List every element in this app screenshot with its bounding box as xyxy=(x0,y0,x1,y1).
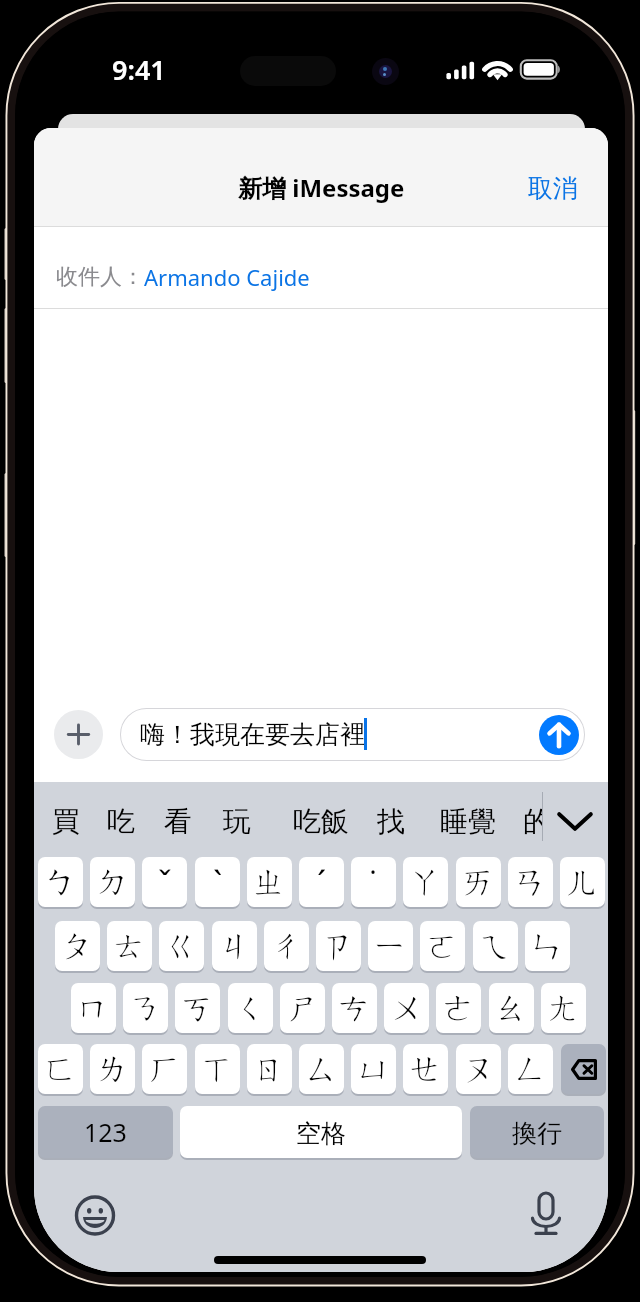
staticText: ㄧ xyxy=(374,925,408,967)
button[interactable]: 看 xyxy=(153,795,203,847)
staticText: 123 xyxy=(84,1115,127,1149)
button[interactable]: ㄛ xyxy=(420,921,465,971)
staticText: 找 xyxy=(377,804,405,839)
button[interactable]: ㄥ xyxy=(508,1044,553,1094)
button[interactable]: ㄒ xyxy=(195,1044,240,1094)
staticText: ㄜ xyxy=(442,987,476,1029)
button[interactable]: ㄔ xyxy=(264,921,309,971)
button[interactable]: ㄗ xyxy=(316,921,361,971)
button[interactable]: ㄍ xyxy=(159,921,204,971)
button[interactable]: ㄠ xyxy=(489,983,534,1033)
staticText: ㄞ xyxy=(462,861,496,903)
staticText: ㄍ xyxy=(165,925,199,967)
button[interactable]: ㄝ xyxy=(403,1044,448,1094)
staticText: ˋ xyxy=(213,860,223,905)
button[interactable]: ㄜ xyxy=(436,983,481,1033)
button[interactable]: ㄖ xyxy=(247,1044,292,1094)
button[interactable]: ㄡ xyxy=(456,1044,501,1094)
button[interactable]: ˙ xyxy=(351,857,396,907)
staticText: ㄠ xyxy=(495,987,529,1029)
button[interactable]: 找 xyxy=(366,795,416,847)
staticText: 新增 iMessage xyxy=(238,171,405,204)
button[interactable]: 空格 xyxy=(180,1106,462,1158)
button[interactable]: ㄆ xyxy=(55,921,100,971)
staticText: ㄘ xyxy=(338,987,372,1029)
button[interactable]: ㄉ xyxy=(90,857,135,907)
staticText: 玩 xyxy=(223,804,251,839)
button[interactable]: ㄅ xyxy=(38,857,83,907)
staticText: ㄒ xyxy=(201,1048,235,1090)
button[interactable]: ㄑ xyxy=(228,983,273,1033)
button[interactable]: 取消 xyxy=(505,162,600,214)
button[interactable]: ㄋ xyxy=(123,983,168,1033)
button[interactable]: Dictation xyxy=(524,1188,572,1236)
staticText: ˊ xyxy=(317,860,327,905)
button[interactable]: ㄘ xyxy=(332,983,377,1033)
button[interactable]: ㄚ xyxy=(403,857,448,907)
button[interactable]: 睡覺 xyxy=(434,795,502,847)
button[interactable]: 嗨！我現在要去店裡 xyxy=(120,708,585,761)
staticText: 看 xyxy=(164,804,192,839)
button[interactable]: ㄧ xyxy=(368,921,413,971)
button[interactable]: ˇ xyxy=(142,857,187,907)
button[interactable]: 買 xyxy=(41,795,91,847)
staticText: 買 xyxy=(52,804,80,839)
button[interactable]: ㄨ xyxy=(384,983,429,1033)
button[interactable]: ㄩ xyxy=(351,1044,396,1094)
staticText: ㄖ xyxy=(253,1048,287,1090)
button[interactable]: ㄏ xyxy=(142,1044,187,1094)
staticText: ㄝ xyxy=(409,1048,443,1090)
staticText: ㄐ xyxy=(218,925,252,967)
staticText: 的 xyxy=(523,804,542,839)
staticText: ㄈ xyxy=(44,1048,78,1090)
button[interactable]: ㄊ xyxy=(107,921,152,971)
staticText: ㄛ xyxy=(426,925,460,967)
staticText: ㄔ xyxy=(270,925,304,967)
button[interactable]: ㄇ xyxy=(71,983,116,1033)
button[interactable]: 玩 xyxy=(212,795,262,847)
button[interactable]: Emoji xyxy=(69,1189,121,1241)
staticText: ㄙ xyxy=(305,1048,339,1090)
button[interactable]: ㄟ xyxy=(473,921,518,971)
button[interactable]: Collapse candidates xyxy=(549,795,601,847)
staticText: ㄓ xyxy=(253,861,287,903)
button[interactable]: ㄌ xyxy=(90,1044,135,1094)
staticText: ㄑ xyxy=(234,987,268,1029)
button[interactable]: ㄙ xyxy=(299,1044,344,1094)
button[interactable]: ˊ xyxy=(299,857,344,907)
staticText: ㄕ xyxy=(286,987,320,1029)
staticText: ㄋ xyxy=(129,987,163,1029)
button[interactable]: Backspace xyxy=(561,1044,606,1094)
button[interactable]: ㄤ xyxy=(541,983,586,1033)
staticText: 吃 xyxy=(107,804,135,839)
button[interactable]: ㄓ xyxy=(247,857,292,907)
button[interactable]: ㄈ xyxy=(38,1044,83,1094)
staticText: ㄆ xyxy=(61,925,95,967)
button[interactable]: 123 xyxy=(38,1106,173,1158)
button[interactable]: Send xyxy=(539,715,579,755)
staticText: ˙ xyxy=(370,860,377,905)
staticText: ㄟ xyxy=(479,925,513,967)
staticText: ㄏ xyxy=(148,1048,182,1090)
staticText: Armando Cajide xyxy=(144,262,310,292)
button[interactable]: 換行 xyxy=(470,1106,604,1158)
button[interactable]: ㄎ xyxy=(175,983,220,1033)
staticText: 睡覺 xyxy=(440,804,496,839)
staticText: 收件人： xyxy=(56,263,144,291)
button[interactable]: 吃 xyxy=(96,795,146,847)
button[interactable]: 的 xyxy=(512,795,542,847)
button[interactable]: ㄦ xyxy=(560,857,605,907)
staticText: ㄊ xyxy=(113,925,147,967)
button[interactable]: ㄕ xyxy=(280,983,325,1033)
button[interactable]: ˋ xyxy=(195,857,240,907)
staticText: ㄚ xyxy=(409,861,443,903)
button[interactable]: ㄢ xyxy=(508,857,553,907)
button[interactable]: Add attachment xyxy=(54,710,103,759)
button[interactable]: 吃飯 xyxy=(287,795,355,847)
button[interactable]: ㄣ xyxy=(525,921,570,971)
button[interactable]: ㄐ xyxy=(212,921,257,971)
button[interactable]: ㄞ xyxy=(456,857,501,907)
staticText: ㄌ xyxy=(96,1048,130,1090)
staticText: ㄨ xyxy=(390,987,424,1029)
staticText: ㄦ xyxy=(566,861,600,903)
